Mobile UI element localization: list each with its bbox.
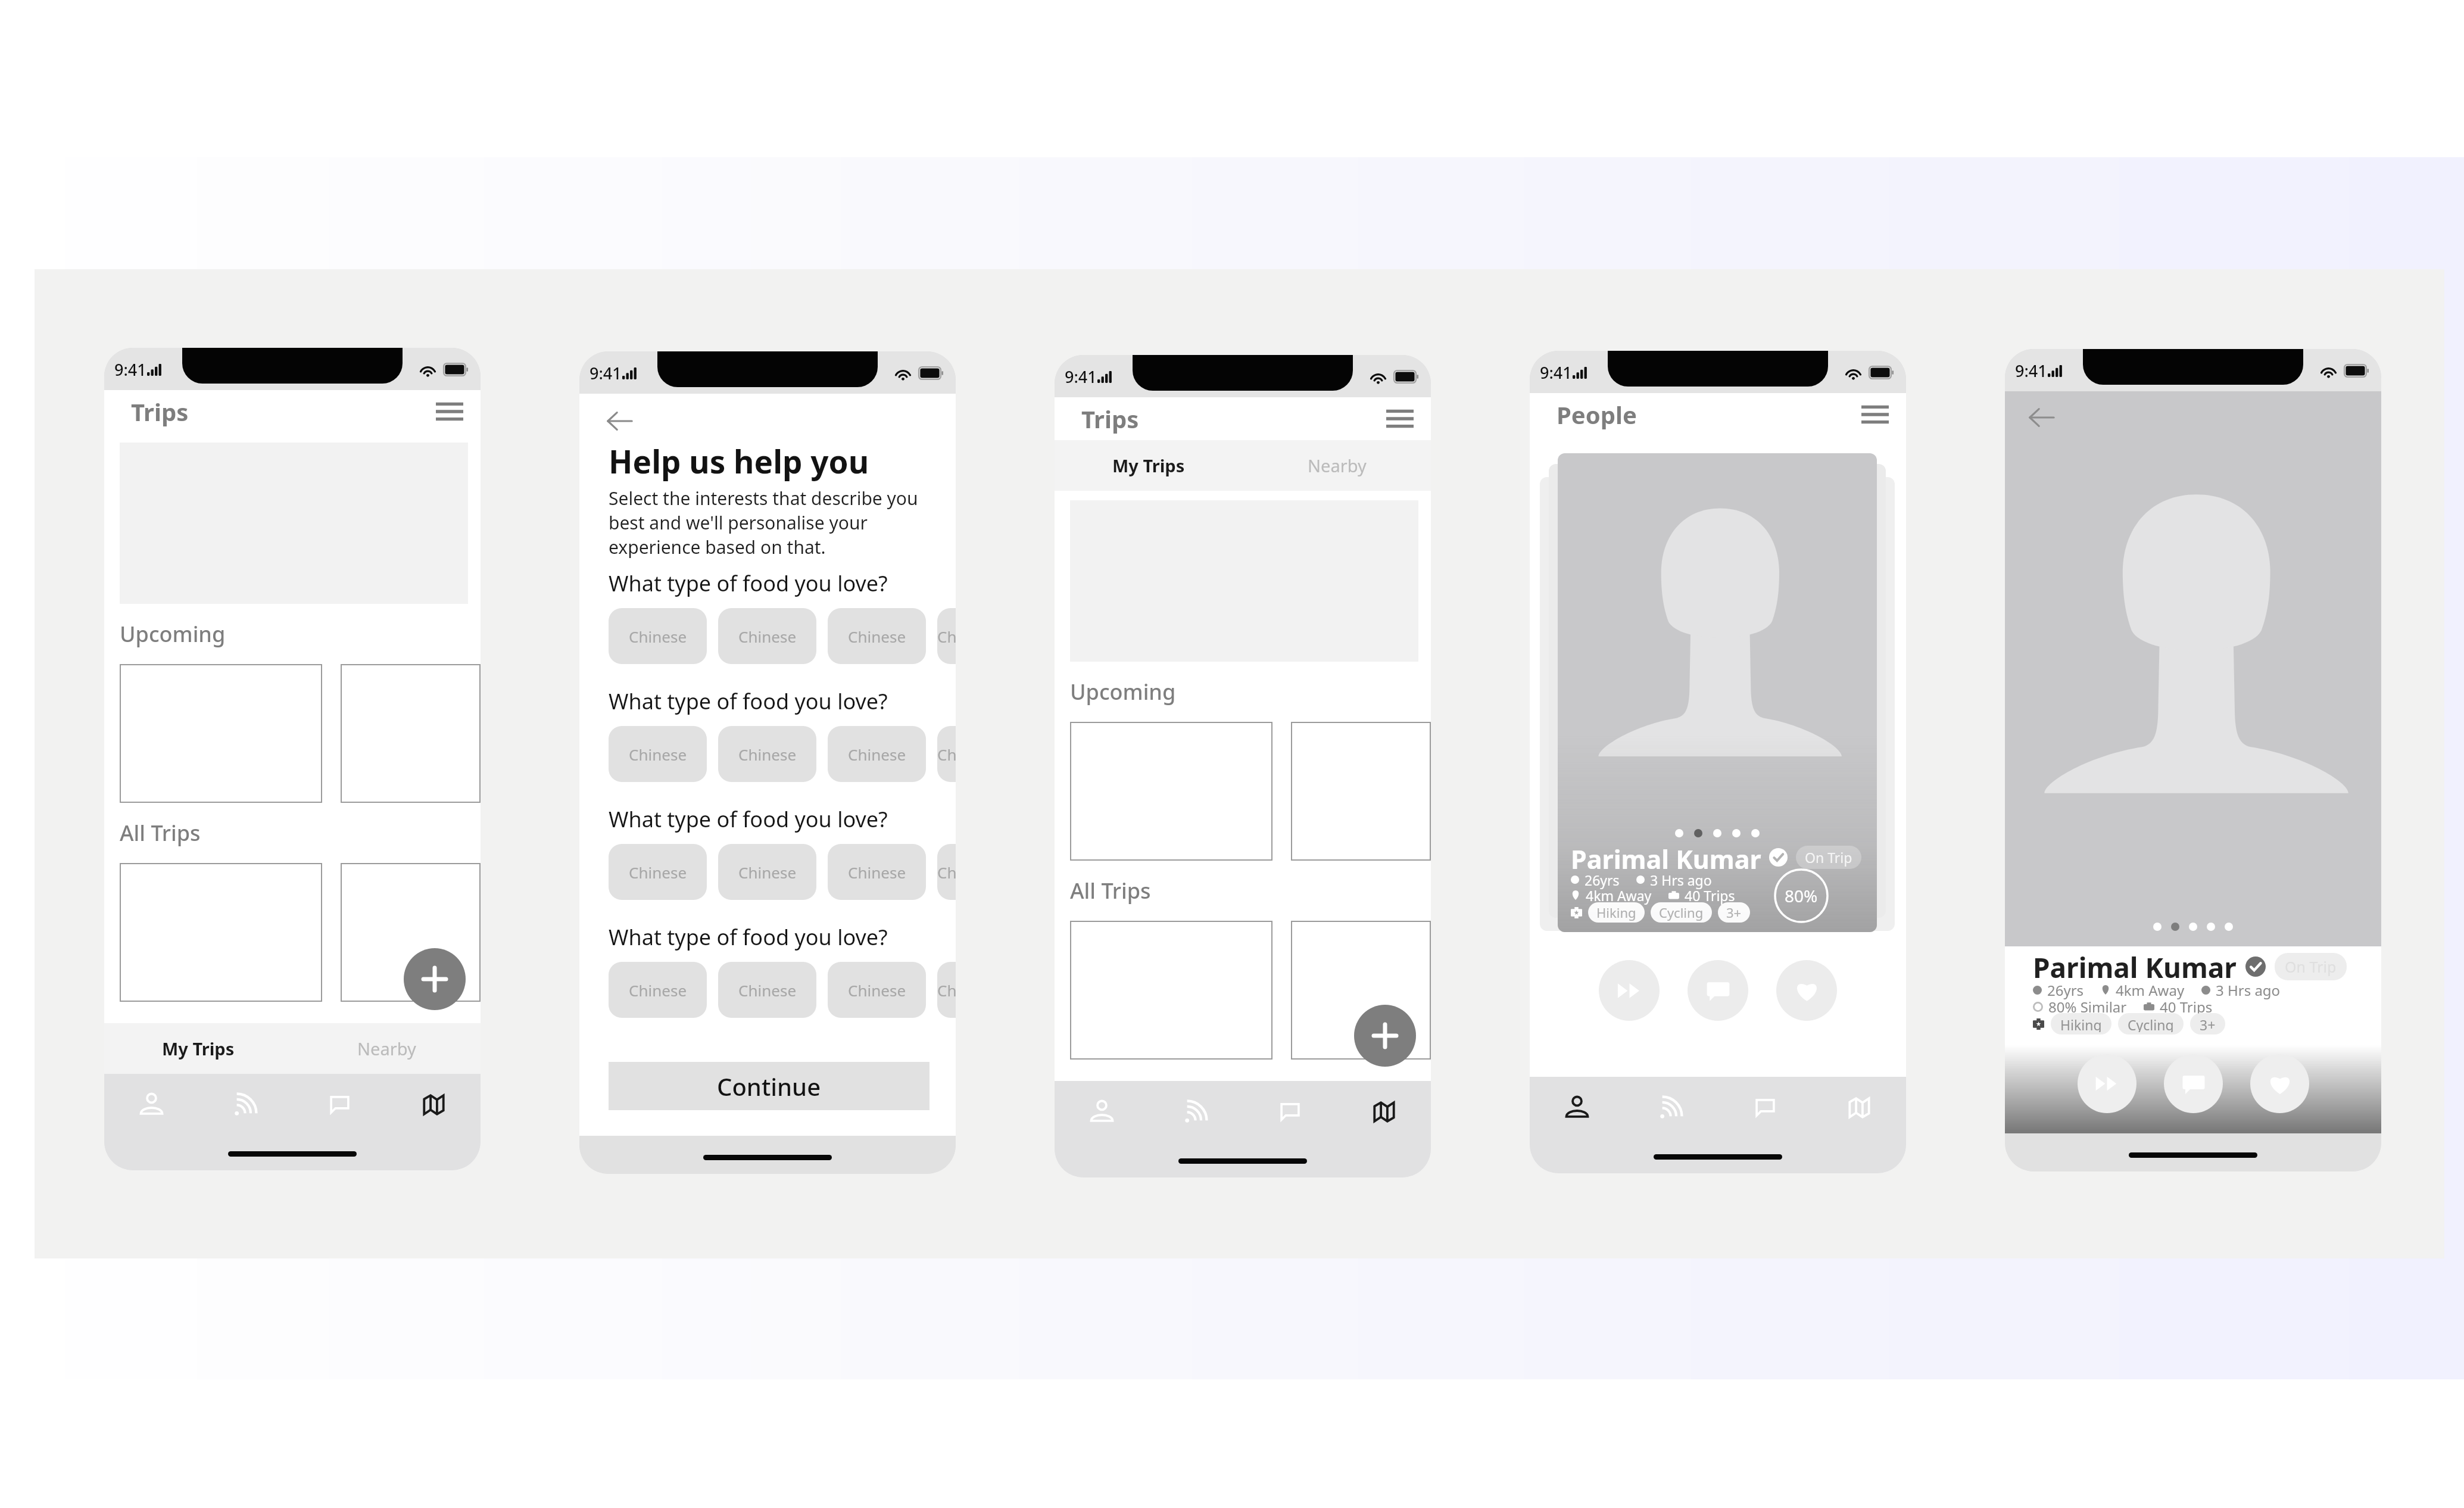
staticText: 9:41 — [2015, 360, 2047, 382]
button[interactable] — [120, 664, 322, 803]
button[interactable]: Profile — [1055, 1081, 1149, 1142]
button[interactable]: My Trips — [1055, 440, 1243, 491]
staticText: 9:41 — [1065, 366, 1097, 388]
staticText: What type of food you love? — [609, 923, 888, 952]
button[interactable]: Profile — [104, 1074, 198, 1135]
button[interactable]: Chinese — [718, 844, 816, 900]
button[interactable]: Chinese — [609, 962, 707, 1018]
button[interactable]: Menu — [1858, 398, 1892, 431]
staticText: On Trip — [1805, 848, 1852, 867]
staticText: 4km Away — [1586, 886, 1652, 905]
button[interactable] — [1291, 722, 1431, 861]
staticText: 9:41 — [1540, 362, 1572, 384]
button[interactable]: Messages — [1243, 1081, 1337, 1142]
button[interactable]: Profile — [1530, 1077, 1624, 1138]
button[interactable]: Map — [1812, 1077, 1906, 1138]
button[interactable]: Menu — [1383, 402, 1417, 435]
staticText: Chinese — [738, 744, 797, 765]
staticText: Cycling — [2128, 1015, 2174, 1032]
button[interactable]: Nearby — [292, 1023, 481, 1074]
staticText: 80% — [1785, 884, 1818, 907]
staticText: 26yrs — [1585, 871, 1620, 889]
button[interactable]: My Trips — [104, 1023, 292, 1074]
button[interactable]: Chinese — [828, 608, 926, 664]
staticText: Chinese — [848, 862, 906, 883]
staticText: Chinese — [738, 862, 797, 883]
staticText: My Trips — [1112, 454, 1185, 477]
button[interactable] — [341, 664, 481, 803]
button[interactable]: Like — [1776, 960, 1837, 1021]
button[interactable]: Chinese — [609, 844, 707, 900]
button[interactable]: Chinese — [718, 726, 816, 782]
staticText: People — [1557, 398, 1637, 431]
staticText: Chinese — [629, 980, 687, 1001]
button[interactable]: Like — [2250, 1054, 2309, 1113]
button[interactable]: Messages — [292, 1074, 386, 1135]
staticText: Chinese — [629, 862, 687, 883]
button[interactable]: Chinese — [828, 962, 926, 1018]
staticText: On Trip — [2285, 956, 2337, 977]
button[interactable] — [1291, 921, 1431, 1060]
button[interactable]: Skip — [2078, 1054, 2136, 1113]
staticText: 9:41 — [114, 359, 146, 381]
button[interactable]: Chinese — [609, 726, 707, 782]
button[interactable]: Back — [2026, 402, 2057, 433]
button[interactable] — [1070, 921, 1272, 1060]
button[interactable]: Chinese — [828, 726, 926, 782]
staticText: Nearby — [1308, 454, 1367, 477]
staticText: All Trips — [1070, 876, 1151, 905]
button[interactable]: Chinese — [937, 962, 956, 1018]
button[interactable]: Add trip — [404, 948, 466, 1010]
staticText: Chinese — [738, 980, 797, 1001]
button[interactable] — [120, 863, 322, 1002]
staticText: Trips — [131, 395, 189, 428]
button[interactable]: Feed — [198, 1074, 292, 1135]
staticText: Upcoming — [120, 619, 226, 649]
staticText: 40 Trips — [1685, 886, 1735, 905]
button[interactable]: Messages — [1718, 1077, 1812, 1138]
staticText: Chinese — [937, 626, 956, 647]
staticText: Chinese — [937, 980, 956, 1001]
staticText: Chinese — [629, 626, 687, 647]
button[interactable]: Back — [604, 406, 635, 437]
button[interactable]: Map — [1337, 1081, 1431, 1142]
staticText: Help us help you — [609, 440, 869, 482]
button[interactable]: Feed — [1149, 1081, 1243, 1142]
staticText: 26yrs — [2047, 980, 2084, 1000]
staticText: Chinese — [848, 744, 906, 765]
staticText: My Trips — [162, 1037, 235, 1060]
button[interactable]: Skip — [1599, 960, 1660, 1021]
button[interactable]: Chinese — [718, 608, 816, 664]
button[interactable]: Map — [386, 1074, 481, 1135]
button[interactable]: Nearby — [1243, 440, 1431, 491]
staticText: Chinese — [937, 744, 956, 765]
staticText: Chinese — [848, 626, 906, 647]
button[interactable]: Chinese — [828, 844, 926, 900]
staticText: Cycling — [1659, 903, 1704, 921]
staticText: 3+ — [1726, 903, 1742, 921]
staticText: Continue — [717, 1070, 821, 1102]
staticText: 9:41 — [590, 362, 622, 384]
staticText: What type of food you love? — [609, 687, 888, 716]
button[interactable]: Feed — [1624, 1077, 1718, 1138]
button[interactable] — [341, 863, 481, 1002]
staticText: Trips — [1081, 403, 1139, 435]
staticText: Select the interests that describe you b… — [609, 486, 918, 559]
button[interactable]: Menu — [433, 395, 466, 428]
staticText: Chinese — [738, 626, 797, 647]
button[interactable]: Chinese — [937, 844, 956, 900]
staticText: Chinese — [937, 862, 956, 883]
button[interactable]: Chinese — [937, 726, 956, 782]
button[interactable]: Message — [1688, 960, 1748, 1021]
button[interactable]: Message — [2164, 1054, 2223, 1113]
button[interactable]: Chinese — [937, 608, 956, 664]
staticText: Parimal Kumar — [2033, 949, 2237, 984]
staticText: Hiking — [2060, 1015, 2102, 1032]
button[interactable]: Chinese — [718, 962, 816, 1018]
button[interactable] — [1070, 722, 1272, 861]
staticText: 3 Hrs ago — [1650, 871, 1712, 889]
staticText: Upcoming — [1070, 677, 1176, 706]
button[interactable]: Chinese — [609, 608, 707, 664]
button[interactable]: Continue — [609, 1062, 930, 1110]
button[interactable]: Add trip — [1354, 1005, 1416, 1067]
